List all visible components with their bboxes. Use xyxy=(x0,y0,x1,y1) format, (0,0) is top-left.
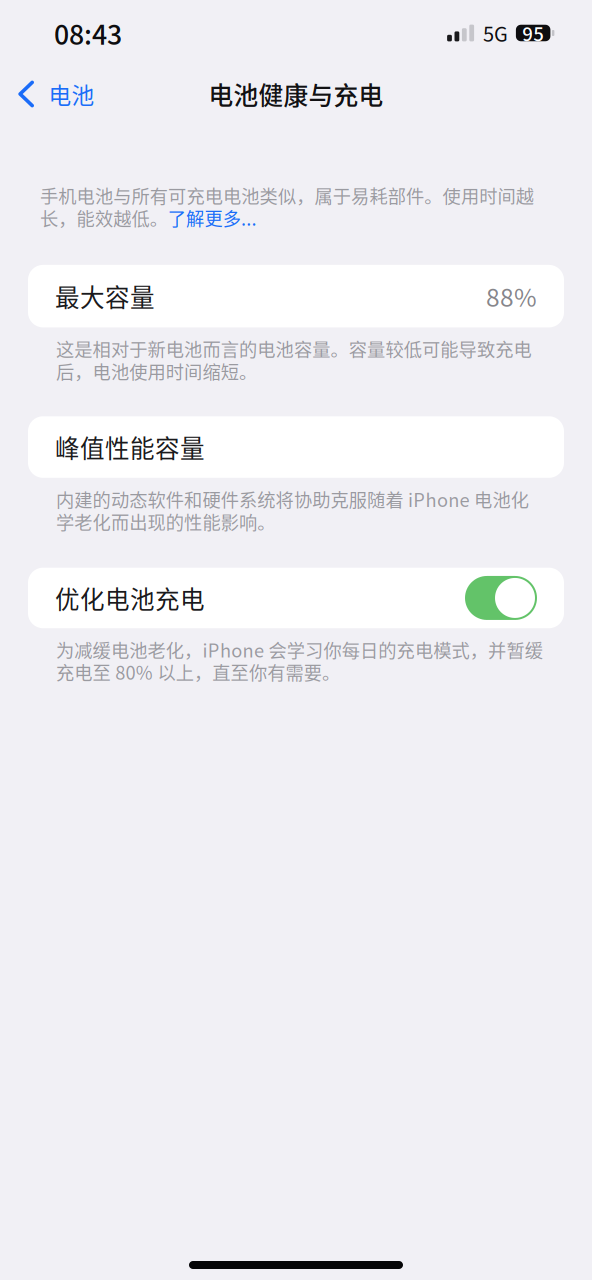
staticText: 08:43 xyxy=(54,14,122,52)
staticText: 为减缓电池老化，iPhone 会学习你每日的充电模式，并暂缓 xyxy=(56,636,543,663)
staticText: 这是相对于新电池而言的电池容量。容量较低可能导致充电 xyxy=(56,335,531,362)
button[interactable]: 最大容量 xyxy=(0,265,592,327)
staticText: 学老化而出现的性能影响。 xyxy=(56,508,275,535)
staticText: 峰值性能容量 xyxy=(55,429,205,465)
button[interactable]: 优化电池充电 xyxy=(0,568,592,628)
button[interactable]: 优化电池充电，已开启 xyxy=(465,576,537,620)
button[interactable]: 峰值性能容量 xyxy=(0,416,592,478)
staticText: 5G xyxy=(483,18,508,47)
staticText: 88% xyxy=(486,278,537,314)
staticText: 电池 xyxy=(48,78,94,110)
staticText: 95 xyxy=(522,19,544,46)
button[interactable]: 电池 xyxy=(0,69,108,119)
staticText: 长，能效越低。 xyxy=(40,204,168,231)
staticText: 优化电池充电 xyxy=(55,580,205,616)
staticText: 充电至 80% 以上，直至你有需要。 xyxy=(56,659,340,685)
button[interactable]: 了解更多... xyxy=(168,204,257,231)
staticText: 手机电池与所有可充电电池类似，属于易耗部件。使用时间越 xyxy=(40,182,534,208)
staticText: 最大容量 xyxy=(55,278,155,314)
staticText: 后，电池使用时间缩短。 xyxy=(56,358,257,384)
staticText: 了解更多... xyxy=(168,204,257,231)
staticText: 电池健康与充电 xyxy=(208,76,383,112)
staticText: 内建的动态软件和硬件系统将协助克服随着 iPhone 电池化 xyxy=(56,486,529,512)
